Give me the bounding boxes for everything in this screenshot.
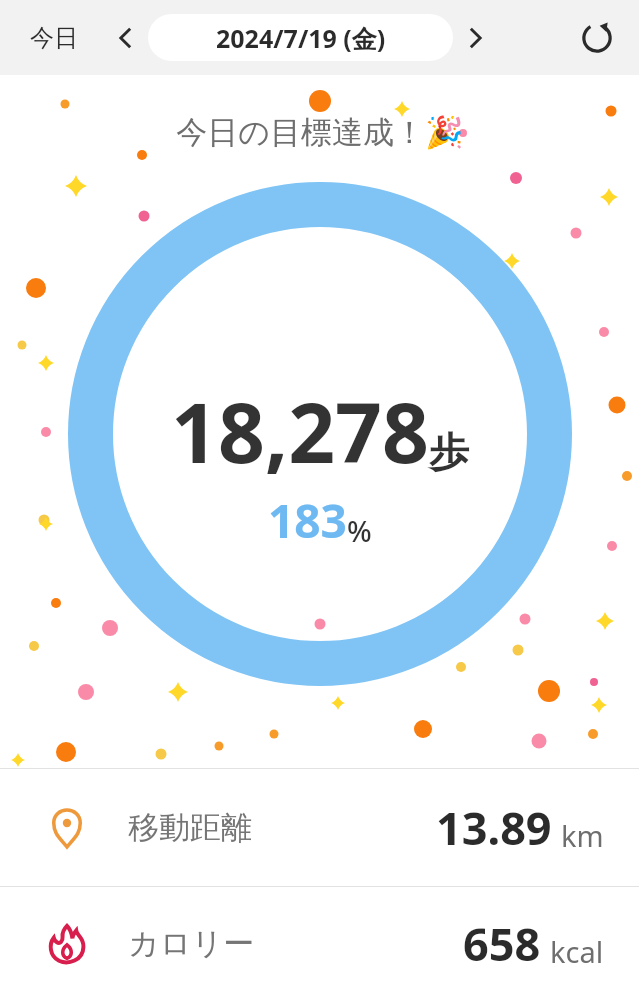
button[interactable]: 今日 [22, 13, 86, 63]
staticText: 歩 [429, 427, 469, 477]
button[interactable]: 前の日 [106, 18, 146, 58]
button[interactable]: 更新 [573, 14, 621, 62]
staticText: 13.89 [436, 797, 552, 858]
staticText: % [347, 511, 372, 550]
button[interactable]: 移動距離 [0, 769, 639, 886]
button[interactable]: 次の日 [455, 18, 495, 58]
staticText: 183 [268, 489, 347, 552]
staticText: 2024/7/19 (金) [216, 21, 386, 55]
button[interactable]: カロリー [0, 887, 639, 1000]
staticText: 658 [463, 913, 541, 974]
staticText: カロリー [128, 924, 255, 963]
staticText: 移動距離 [128, 808, 252, 847]
button[interactable]: 2024/7/19 (金) [148, 14, 453, 61]
staticText: km [561, 816, 604, 855]
staticText: 今日 [30, 23, 78, 53]
staticText: 今日の目標達成！🎉 [176, 113, 464, 152]
staticText: kcal [550, 932, 604, 971]
staticText: 18,278 [171, 375, 429, 487]
